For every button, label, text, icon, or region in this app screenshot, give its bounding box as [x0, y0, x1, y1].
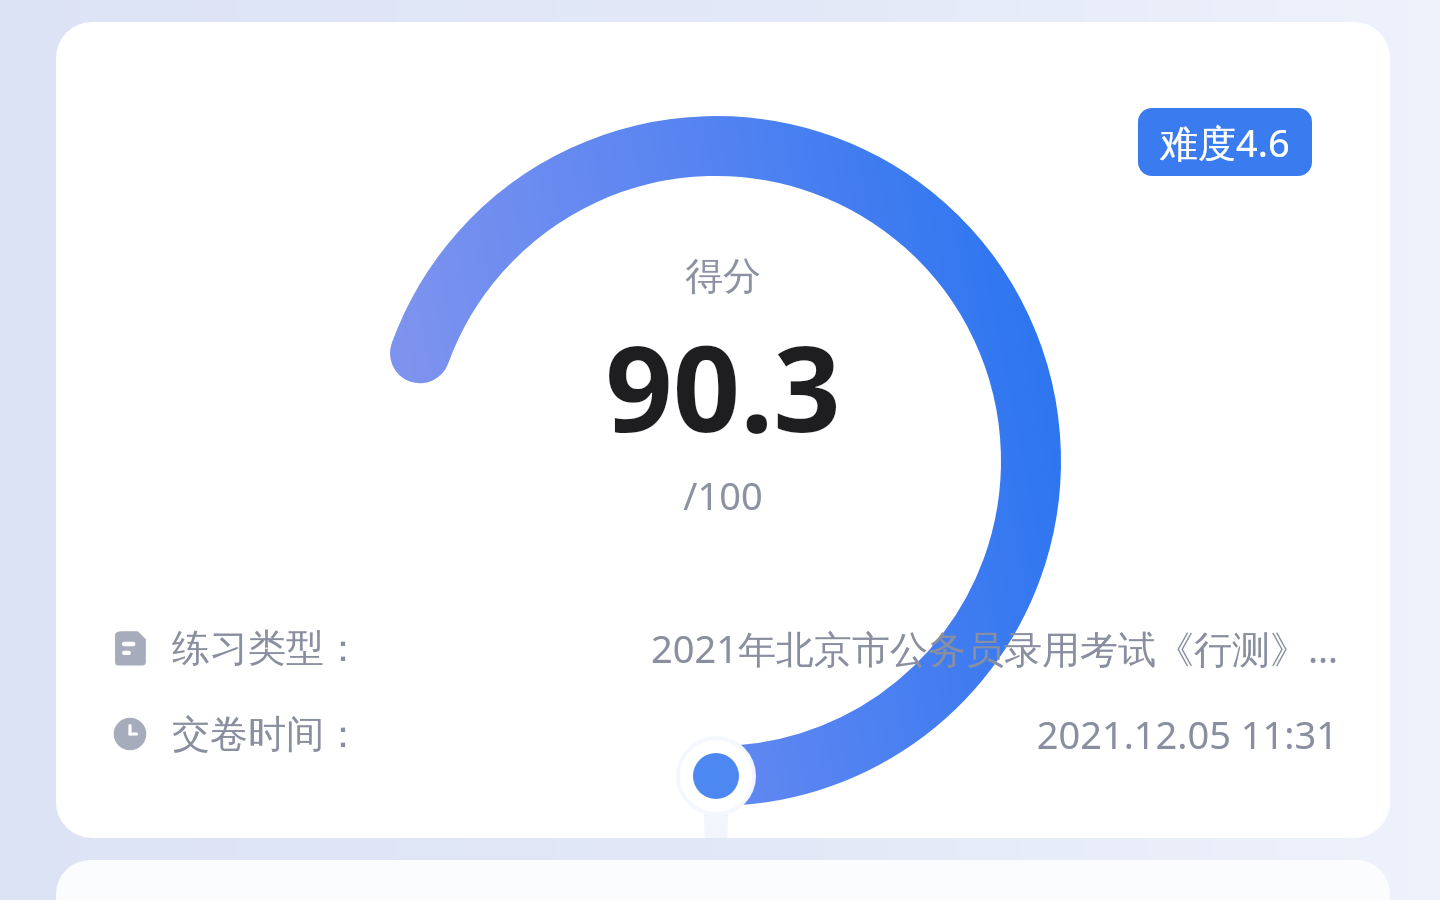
button[interactable]: Submit time — [108, 708, 1338, 760]
other: Submit time — [108, 712, 152, 756]
staticText: 练习类型： — [172, 624, 362, 672]
button[interactable]: 难度4.6 — [1138, 108, 1312, 176]
staticText: /100 — [683, 469, 763, 521]
staticText: 90.3 — [605, 306, 841, 467]
staticText: 交卷时间： — [172, 710, 362, 758]
button[interactable]: Practice type — [108, 622, 1338, 674]
staticText: 2021年北京市公务员录用考试《行测》… — [650, 622, 1338, 674]
staticText: 得分 — [685, 252, 761, 300]
other: Practice type — [108, 626, 152, 670]
button[interactable]: 得分 — [56, 22, 1390, 838]
staticText: 难度4.6 — [1160, 116, 1290, 168]
staticText: 2021.12.05 11:31 — [1036, 708, 1338, 760]
